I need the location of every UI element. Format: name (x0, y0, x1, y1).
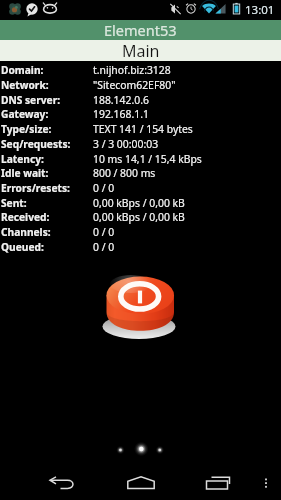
staticText: 0,00 kBps / 0,00 kB (93, 196, 185, 210)
staticText: Type/size: (1, 122, 52, 136)
staticText: Sent: (1, 196, 27, 210)
staticText: Network: (1, 78, 49, 92)
staticText: Idle wait: (1, 166, 49, 180)
staticText: Element53 (104, 20, 177, 40)
staticText: 0 / 0 (93, 240, 115, 254)
staticText: 10 ms 14,1 / 15,4 kBps (93, 152, 202, 166)
staticText: Domain: (1, 63, 44, 77)
staticText: TEXT 141 / 154 bytes (93, 122, 193, 136)
staticText: 188.142.0.6 (93, 93, 149, 107)
staticText: 3 / 3 00:00:03 (93, 137, 159, 151)
staticText: Queued: (1, 240, 44, 254)
staticText: 0,00 kBps / 0,00 kB (93, 210, 185, 224)
staticText: 0 / 0 (93, 225, 115, 239)
button[interactable]: More options (251, 466, 281, 500)
staticText: 0 / 0 (93, 181, 115, 195)
staticText: Seq/requests: (1, 137, 71, 151)
staticText: 192.168.1.1 (93, 107, 149, 121)
button[interactable]: Power (99, 272, 183, 344)
staticText: Latency: (1, 152, 44, 166)
staticText: DNS server: (1, 93, 61, 107)
staticText: Channels: (1, 225, 51, 239)
button[interactable]: Recent apps (195, 466, 243, 500)
staticText: 800 / 800 ms (93, 166, 156, 180)
staticText: Main (122, 40, 160, 61)
staticText: 13:01 (245, 2, 275, 18)
staticText: t.nijhof.biz:3128 (93, 63, 171, 77)
button[interactable]: Home (117, 466, 165, 500)
staticText: "Sitecom62EF80" (93, 78, 176, 92)
staticText: Gateway: (1, 107, 49, 121)
staticText: Errors/resets: (1, 181, 70, 195)
staticText: Received: (1, 210, 50, 224)
button[interactable]: Back (38, 466, 86, 500)
